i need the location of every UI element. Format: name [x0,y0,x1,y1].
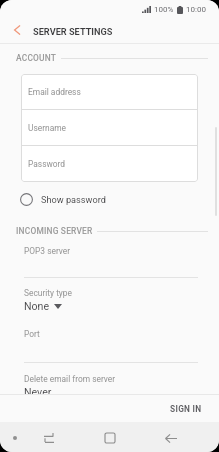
staticText: Security type [24,288,73,298]
staticText: Port [24,329,40,339]
button[interactable]: Port [0,319,219,360]
button[interactable]: POP3 server [0,236,219,277]
staticText: 100% [154,5,174,14]
button[interactable]: Show password [0,182,219,216]
staticText: Email address [28,87,81,97]
staticText: Never [24,386,52,394]
staticText: INCOMING SERVER [16,226,93,236]
staticText: ACCOUNT [16,53,57,63]
button[interactable]: Navigate up [0,18,30,43]
button[interactable]: Username [21,110,198,145]
staticText: Delete email from server [24,374,116,384]
staticText: None [24,300,50,312]
staticText: Username [28,123,67,133]
button[interactable]: Home [94,422,126,452]
staticText: POP3 server [24,246,71,256]
staticText: SIGN IN [170,404,202,414]
button[interactable]: Security type [0,278,219,319]
staticText: Show password [41,194,106,205]
staticText: SERVER SETTINGS [33,26,113,37]
staticText: Password [28,159,66,169]
button[interactable]: Back [155,422,187,452]
button[interactable]: Notification [4,422,25,452]
button[interactable]: Recent apps [33,422,64,452]
button[interactable]: SIGN IN [153,398,219,420]
button[interactable]: Password [21,146,198,181]
button[interactable]: Delete email from server [0,364,219,394]
staticText: 10:00 [186,5,206,14]
button[interactable]: Email address [21,74,198,109]
